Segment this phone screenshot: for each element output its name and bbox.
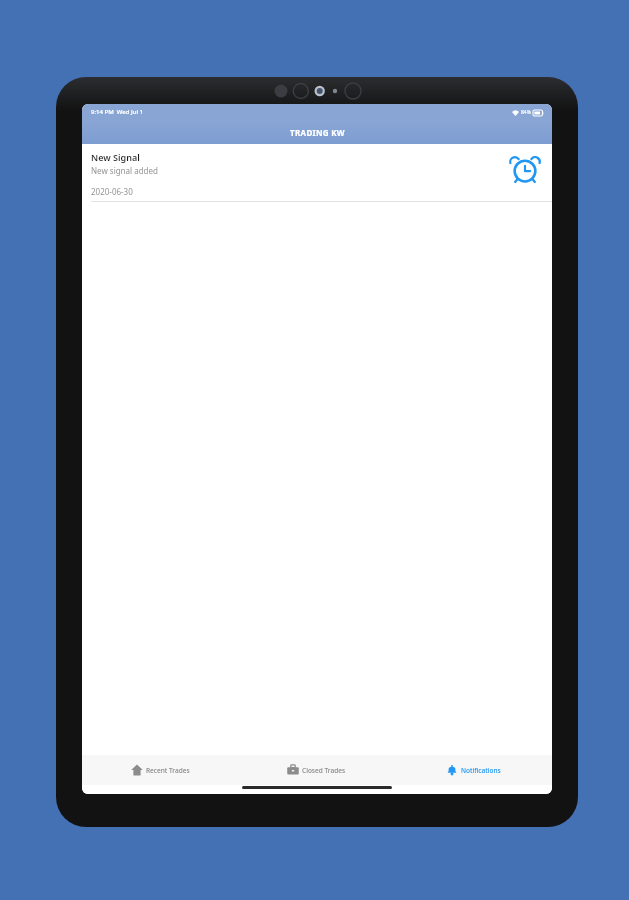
staticText: Recent Trades xyxy=(146,766,190,775)
button[interactable]: New Signal xyxy=(82,144,552,201)
staticText: 84% xyxy=(521,109,531,116)
staticText: 2020-06-30 xyxy=(91,186,133,197)
staticText: 9:14 PM Wed Jul 1 xyxy=(91,108,144,116)
staticText: New Signal xyxy=(91,151,140,163)
button[interactable]: Notifications xyxy=(395,755,552,785)
button[interactable]: Closed Trades xyxy=(238,755,395,785)
staticText: Closed Trades xyxy=(302,766,346,775)
button[interactable]: Recent Trades xyxy=(82,755,238,785)
staticText: Notifications xyxy=(461,766,501,775)
staticText: New signal added xyxy=(91,165,158,176)
staticText: TRADING KW xyxy=(290,127,345,138)
button[interactable]: Alarm xyxy=(508,152,542,186)
